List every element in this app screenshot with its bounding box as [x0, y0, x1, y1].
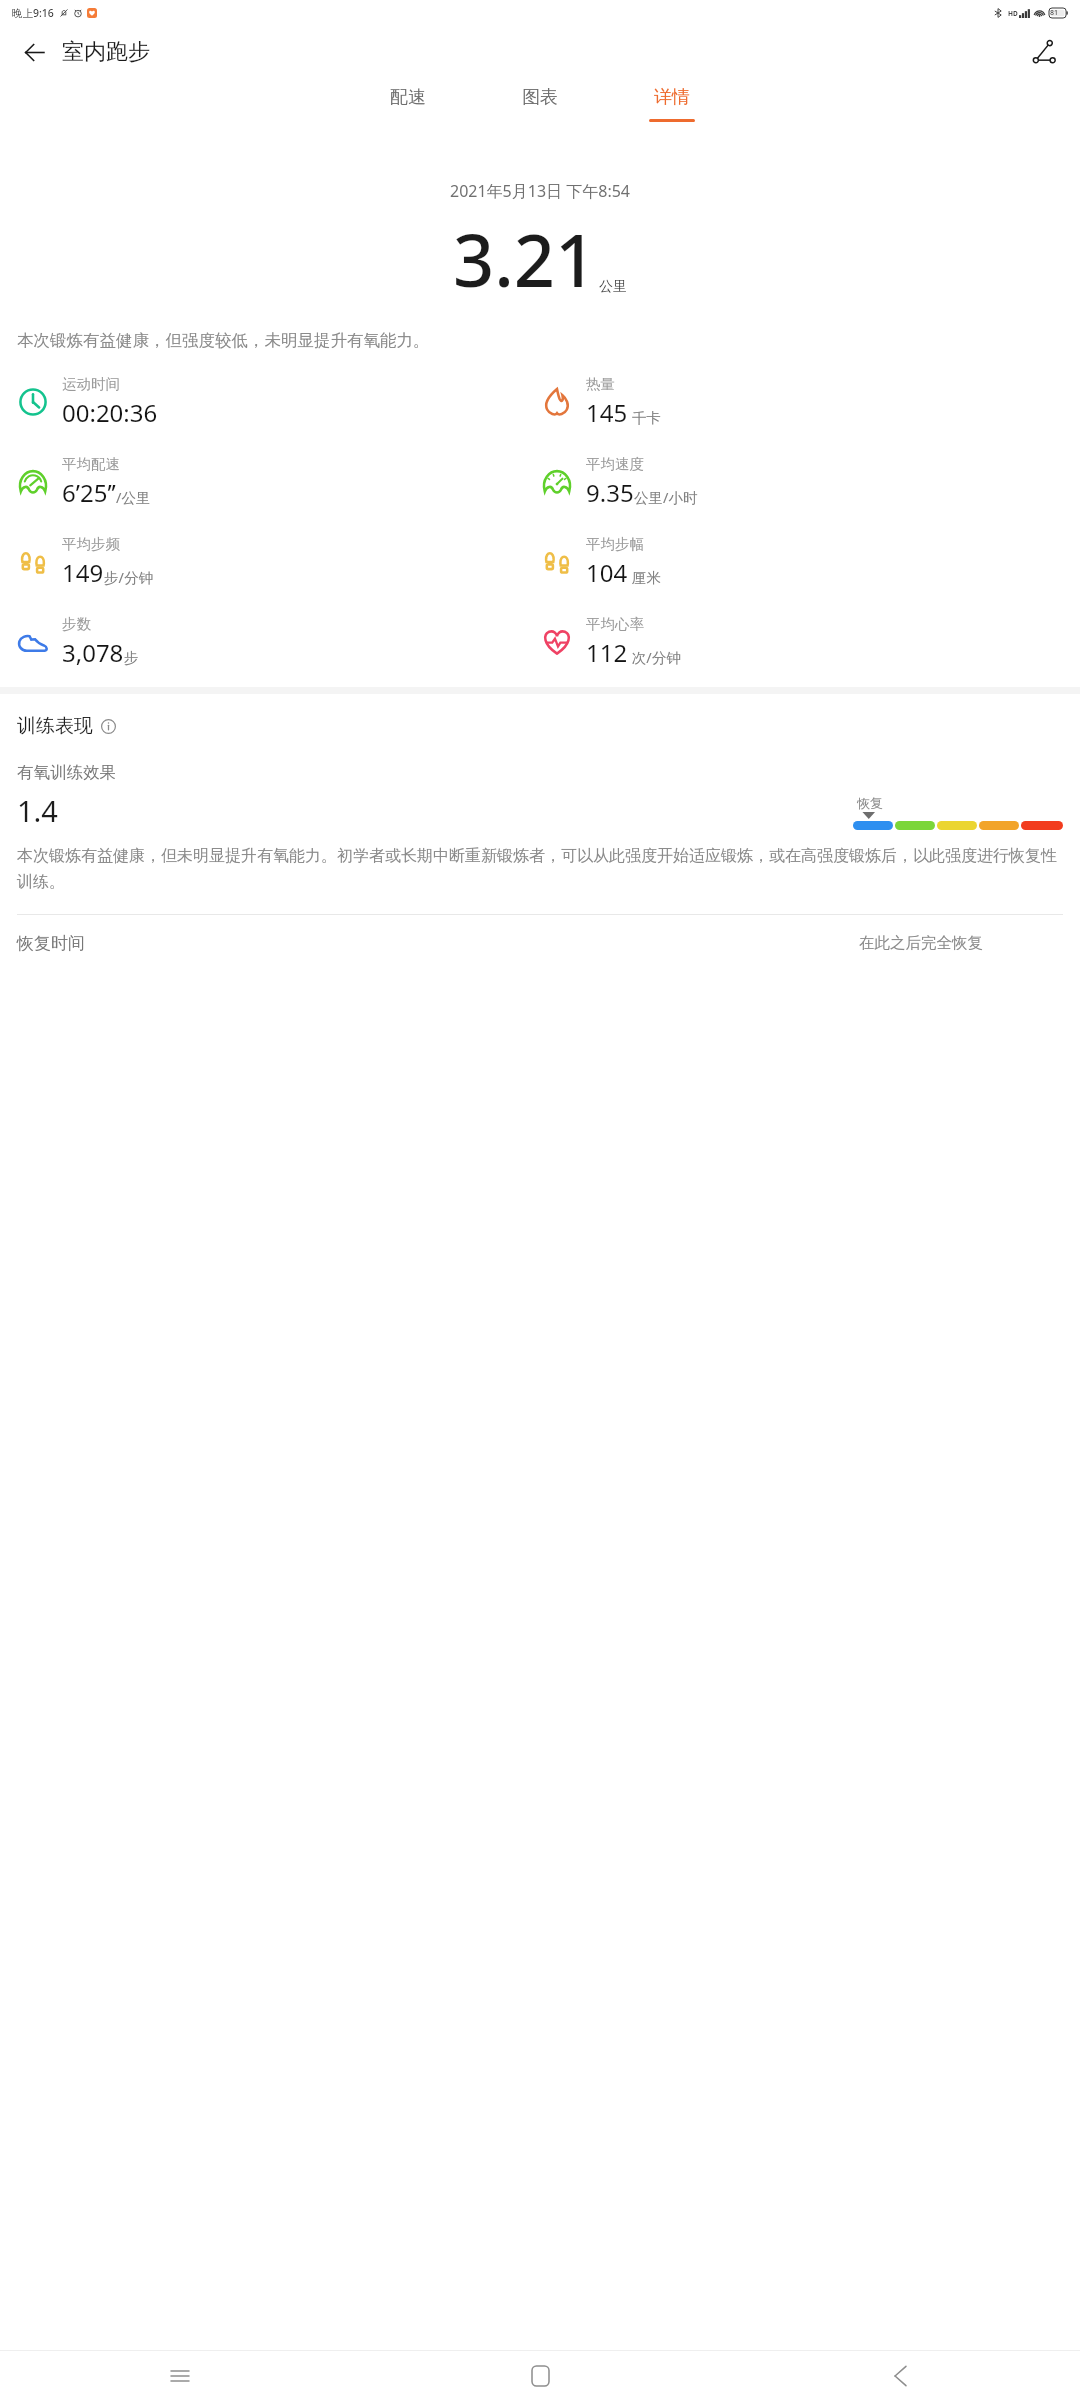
staticText: 晚上9:16 [12, 6, 54, 20]
staticText: 千卡 [628, 407, 661, 427]
button[interactable]: 步数 [16, 615, 540, 669]
staticText: 平均步频 [62, 535, 120, 553]
staticText: 配速 [390, 86, 426, 109]
button[interactable]: 图表 [492, 78, 588, 119]
button[interactable]: Share [1022, 30, 1066, 74]
button[interactable]: Back [720, 2351, 1080, 2400]
button[interactable]: 平均速度 [540, 455, 1064, 509]
staticText: 有氧训练效果 [17, 762, 116, 783]
staticText: 112 [586, 636, 628, 669]
staticText: 3,078 [62, 636, 124, 669]
button[interactable]: 训练表现 [17, 714, 116, 738]
staticText: 00:20:36 [62, 396, 158, 429]
button[interactable]: 详情 [624, 78, 720, 122]
staticText: HD [1008, 9, 1018, 18]
staticText: 步/分钟 [104, 567, 153, 587]
button[interactable]: 平均步幅 [540, 535, 1064, 589]
button[interactable]: 平均步频 [16, 535, 540, 589]
staticText: 本次锻炼有益健康，但强度较低，未明显提升有氧能力。 [17, 330, 1063, 351]
button[interactable]: Recents [0, 2351, 360, 2400]
staticText: 室内跑步 [62, 38, 150, 66]
staticText: 1.4 [17, 791, 58, 830]
staticText: 本次锻炼有益健康，但未明显提升有氧能力。初学者或长期中断重新锻炼者，可以从此强度… [17, 846, 1063, 892]
staticText: 平均速度 [586, 455, 644, 473]
staticText: 3.21 [453, 210, 597, 308]
staticText: 在此之后完全恢复 [859, 933, 983, 953]
staticText: 6’25’’ [62, 476, 116, 509]
staticText: 平均配速 [62, 455, 120, 473]
button[interactable]: Home [360, 2351, 720, 2400]
staticText: 2021年5月13日 下午8:54 [450, 180, 630, 202]
button[interactable]: 平均心率 [540, 615, 1064, 669]
staticText: 步数 [62, 615, 91, 633]
button[interactable]: 热量 [540, 375, 1064, 429]
staticText: 145 [586, 396, 628, 429]
staticText: 104 [586, 556, 628, 589]
button[interactable]: 运动时间 [16, 375, 540, 429]
staticText: 厘米 [628, 567, 661, 587]
staticText: 9.35 [586, 476, 634, 509]
staticText: 运动时间 [62, 375, 120, 393]
staticText: 训练表现 [17, 714, 93, 738]
staticText: 平均心率 [586, 615, 644, 633]
staticText: 恢复 [857, 795, 883, 811]
button[interactable]: 配速 [360, 78, 456, 119]
other: Info [101, 719, 116, 734]
staticText: 恢复时间 [17, 933, 85, 954]
staticText: /公里 [116, 487, 151, 507]
staticText: 图表 [522, 86, 558, 109]
button[interactable]: 平均配速 [16, 455, 540, 509]
staticText: 149 [62, 556, 104, 589]
staticText: 81 [1050, 8, 1059, 18]
staticText: 热量 [586, 375, 615, 393]
staticText: 次/分钟 [628, 647, 681, 667]
staticText: 公里/小时 [634, 487, 698, 507]
button[interactable]: Back [12, 30, 56, 74]
staticText: 平均步幅 [586, 535, 644, 553]
staticText: 步 [124, 649, 139, 667]
staticText: 详情 [654, 86, 690, 109]
staticText: 公里 [599, 278, 627, 296]
